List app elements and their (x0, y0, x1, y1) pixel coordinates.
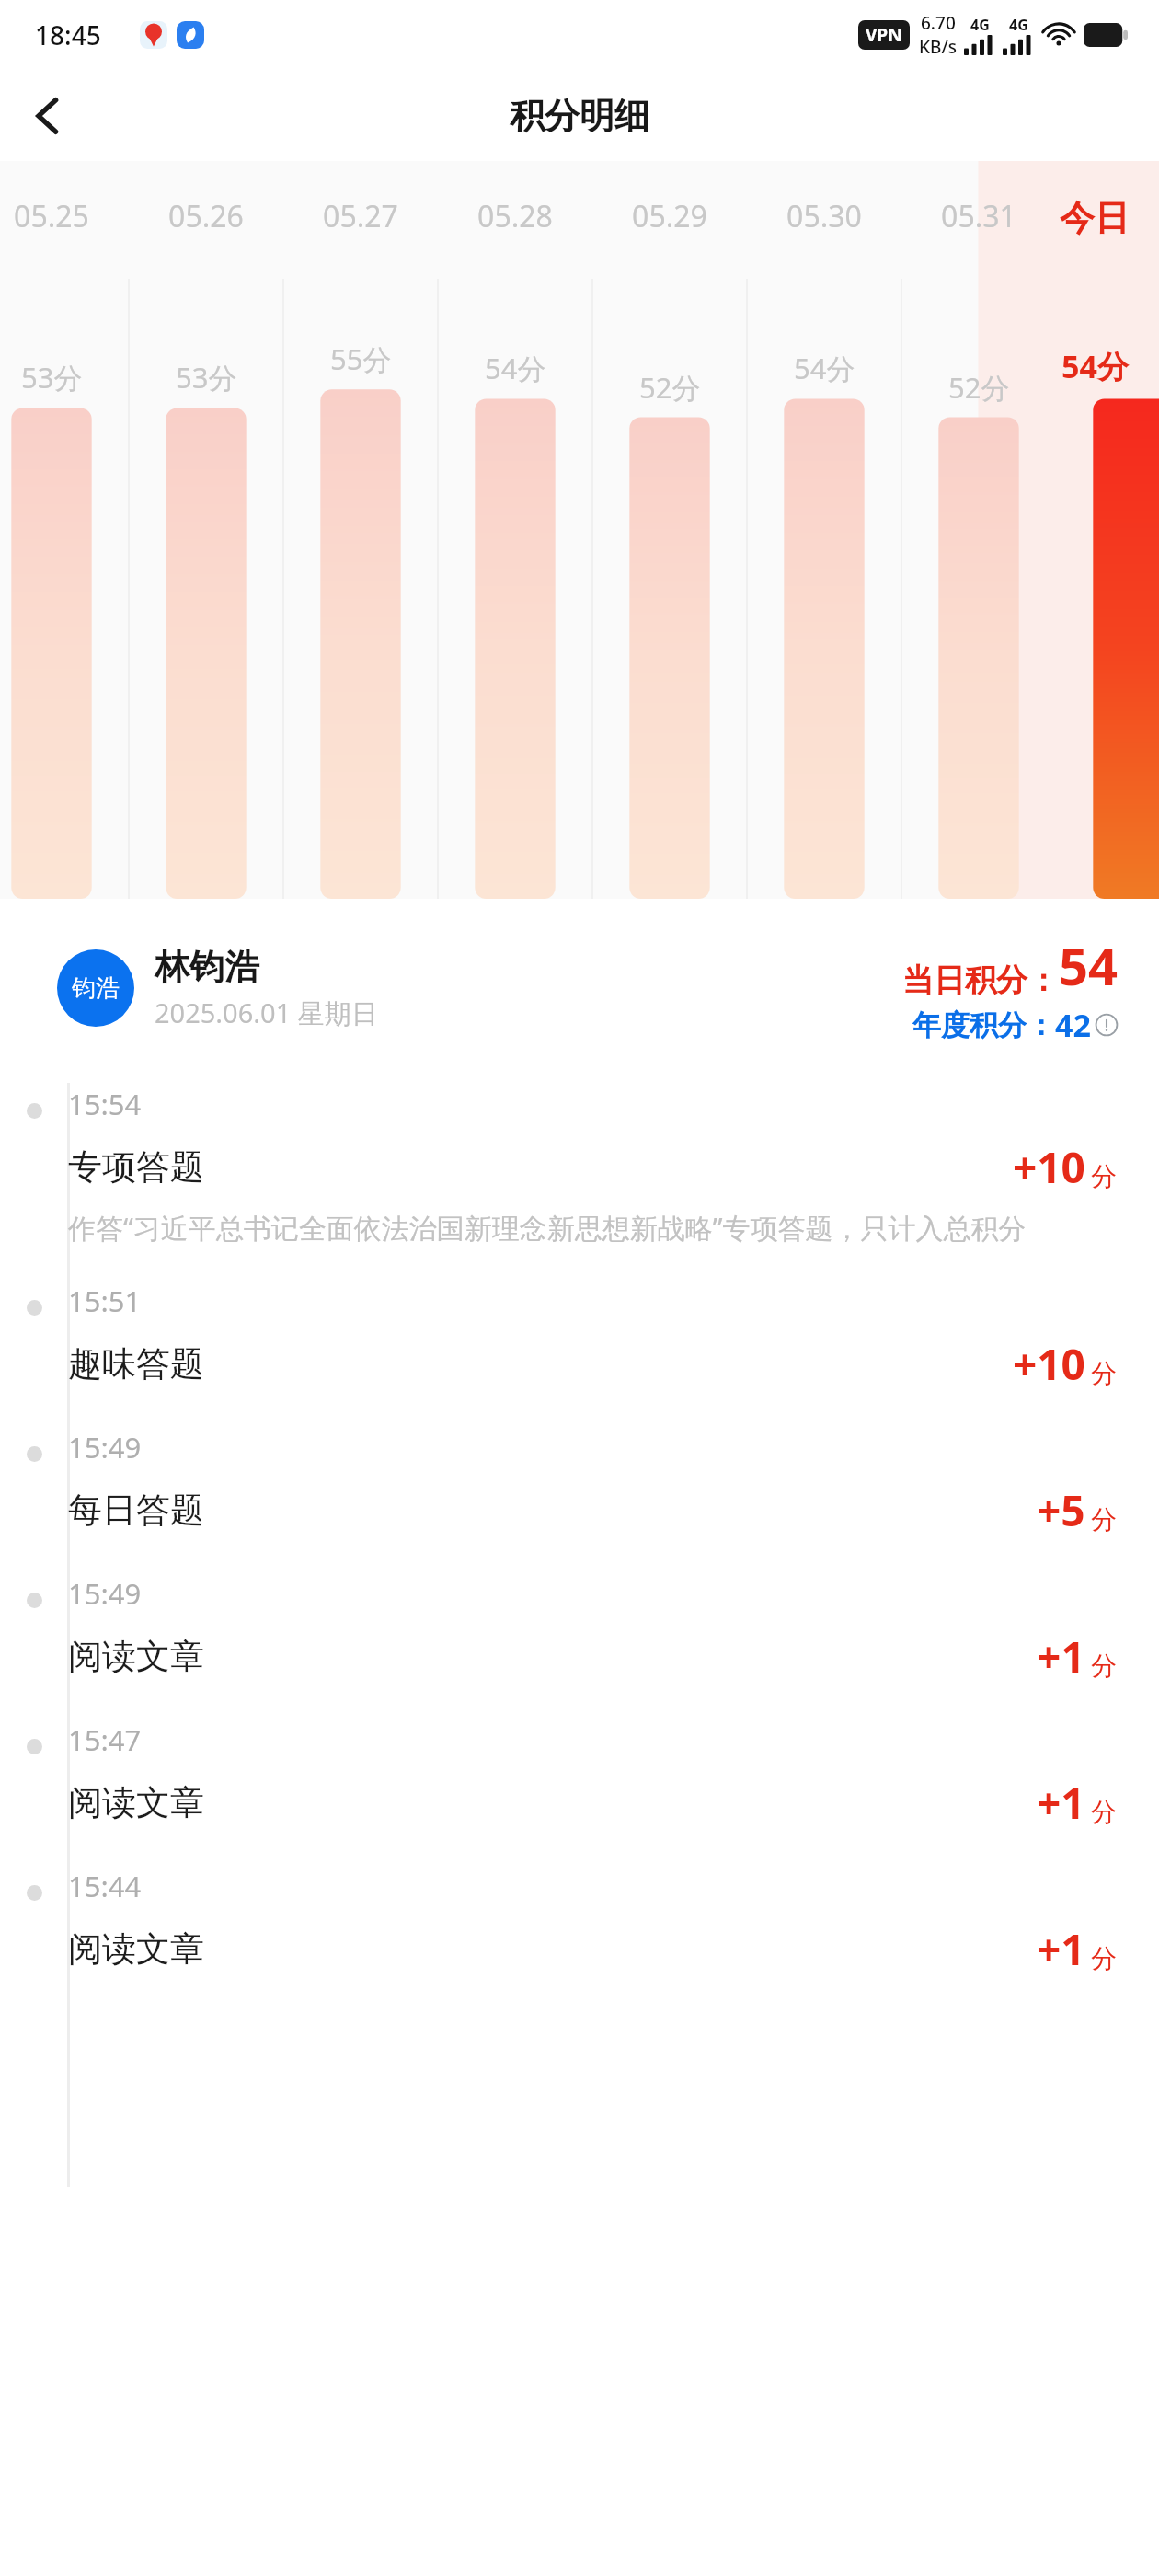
staticText: 42 (1055, 1004, 1091, 1046)
staticText: 分 (1091, 1160, 1117, 1192)
staticText: 05.30 (786, 196, 862, 236)
staticText: 54分 (485, 349, 546, 387)
staticText: 05.31 (941, 196, 1016, 236)
button[interactable]: 15:54 (0, 1066, 1159, 1263)
staticText: 6.70 (921, 11, 956, 35)
staticText: 钧浩 (72, 973, 120, 1004)
staticText: 阅读文章 (68, 1781, 1037, 1824)
staticText: 15:49 (68, 1428, 142, 1466)
staticText: 53分 (21, 358, 83, 397)
staticText: 今日 (1060, 196, 1130, 240)
button[interactable]: 05.25 (0, 161, 129, 899)
button[interactable]: 15:49 (0, 1409, 1159, 1556)
staticText: 林钧浩 (155, 945, 259, 989)
button[interactable]: 05.29 (592, 161, 747, 899)
staticText: 15:47 (68, 1720, 142, 1759)
button[interactable]: 今日 (1056, 161, 1133, 899)
button[interactable]: 05.30 (747, 161, 901, 899)
staticText: +1 (1037, 1627, 1085, 1685)
staticText: 每日答题 (68, 1489, 1037, 1532)
staticText: 52分 (639, 368, 701, 407)
staticText: 趣味答题 (68, 1342, 1013, 1386)
staticText: 分 (1091, 1503, 1117, 1535)
staticText: 15:54 (68, 1085, 142, 1123)
staticText: 53分 (176, 358, 237, 397)
button[interactable]: 05.26 (129, 161, 283, 899)
staticText: 4G (970, 15, 990, 35)
staticText: 专项答题 (68, 1145, 1013, 1189)
staticText: +10 (1013, 1335, 1085, 1393)
staticText: 05.26 (168, 196, 244, 236)
button[interactable]: 15:51 (0, 1263, 1159, 1409)
button[interactable]: 15:49 (0, 1556, 1159, 1702)
button[interactable]: 05.31 (901, 161, 1056, 899)
staticText: 分 (1091, 1942, 1117, 1974)
staticText: 2025.06.01 星期日 (155, 995, 378, 1031)
button[interactable]: 钧浩 (57, 930, 1119, 1046)
staticText: +1 (1037, 1774, 1085, 1832)
staticText: VPN (866, 23, 902, 47)
staticText: +1 (1037, 1920, 1085, 1978)
staticText: 05.28 (477, 196, 553, 236)
button[interactable]: 15:44 (0, 1848, 1159, 1995)
button[interactable]: 05.27 (283, 161, 438, 899)
staticText: 年度积分： (912, 1007, 1055, 1043)
button[interactable]: Back (15, 83, 81, 149)
staticText: 05.27 (323, 196, 398, 236)
staticText: +10 (1013, 1138, 1085, 1196)
staticText: 54分 (794, 349, 855, 387)
staticText: 15:44 (68, 1867, 142, 1905)
staticText: +5 (1037, 1481, 1085, 1539)
staticText: 05.29 (632, 196, 707, 236)
staticText: 积分明细 (510, 94, 649, 138)
staticText: 05.25 (14, 196, 89, 236)
staticText: 分 (1091, 1357, 1117, 1389)
button[interactable]: 15:47 (0, 1702, 1159, 1848)
staticText: 阅读文章 (68, 1635, 1037, 1678)
staticText: KB/s (919, 35, 957, 59)
staticText: 55分 (330, 339, 392, 378)
staticText: 18:45 (35, 17, 101, 52)
staticText: 4G (1009, 15, 1028, 35)
staticText: 54 (1059, 930, 1119, 1000)
button[interactable]: 05.28 (438, 161, 592, 899)
staticText: 15:51 (68, 1282, 142, 1320)
staticText: 作答“习近平总书记全面依法治国新理念新思想新战略”专项答题，只计入总积分 (68, 1209, 1027, 1247)
staticText: 阅读文章 (68, 1927, 1037, 1971)
staticText: 15:49 (68, 1574, 142, 1613)
staticText: 54分 (1061, 345, 1129, 387)
staticText: 分 (1091, 1650, 1117, 1682)
staticText: 分 (1091, 1796, 1117, 1828)
staticText: 52分 (948, 368, 1010, 407)
staticText: 当日积分： (902, 960, 1059, 1000)
